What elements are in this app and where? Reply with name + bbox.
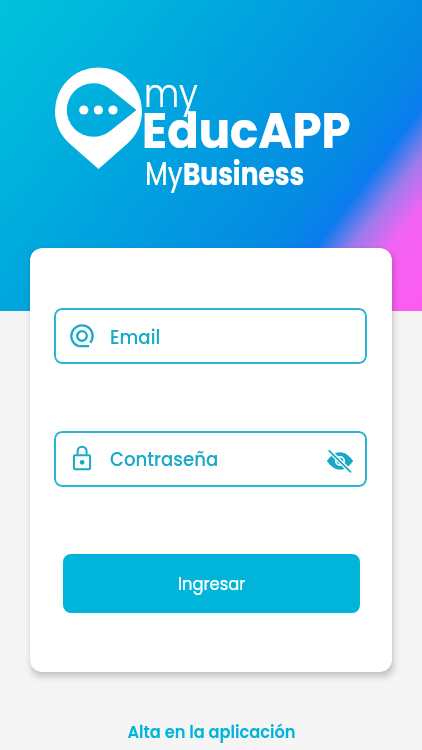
- staticText: my: [144, 66, 198, 121]
- button[interactable]: Ingresar: [63, 554, 360, 613]
- staticText: EducAPP: [142, 96, 351, 166]
- staticText: Business: [183, 151, 304, 196]
- button[interactable]: Alta en la aplicación: [0, 719, 422, 744]
- staticText: Ingresar: [178, 572, 246, 596]
- staticText: Contraseña: [110, 446, 219, 473]
- staticText: Alta en la aplicación: [127, 719, 296, 744]
- staticText: Email: [110, 324, 160, 351]
- staticText: My: [145, 151, 183, 196]
- button[interactable]: Contraseña: [54, 431, 367, 487]
- button[interactable]: Mostrar contraseña: [324, 445, 356, 477]
- button[interactable]: Email: [54, 308, 367, 364]
